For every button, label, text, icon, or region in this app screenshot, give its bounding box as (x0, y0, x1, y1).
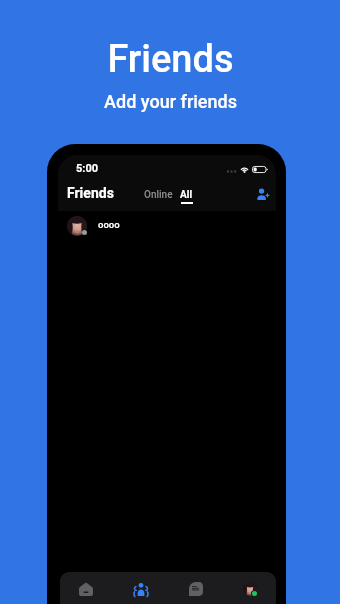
button[interactable]: Online (144, 189, 173, 201)
button[interactable]: All (180, 189, 193, 204)
staticText: Friends (107, 37, 234, 82)
staticText: All (180, 189, 193, 201)
button[interactable]: Profile (236, 572, 264, 604)
button[interactable]: Friends (127, 572, 155, 604)
staticText: Add your friends (104, 91, 237, 112)
button[interactable]: Home (72, 572, 100, 604)
staticText: 5:00 (76, 162, 99, 175)
button[interactable]: oooo (58, 210, 276, 244)
button[interactable]: Friends (67, 185, 114, 201)
button[interactable]: Add friend (254, 185, 271, 202)
staticText: oooo (98, 219, 120, 230)
button[interactable]: Chats (182, 572, 210, 604)
